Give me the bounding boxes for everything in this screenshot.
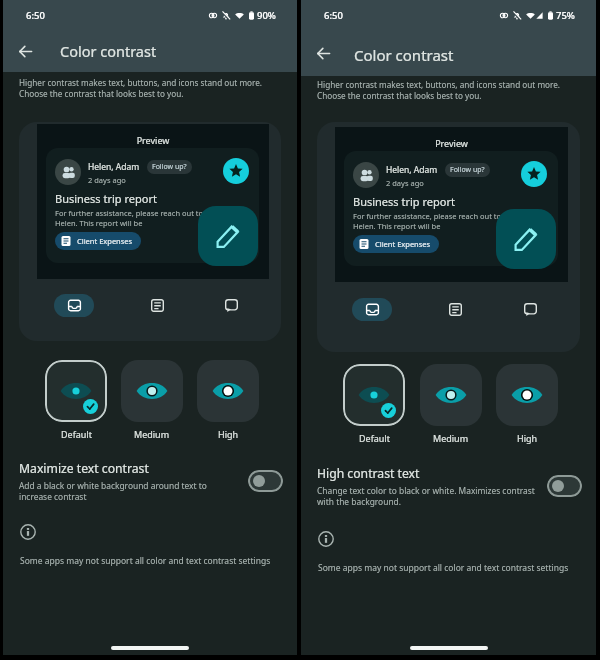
staticText: 2 days ago — [88, 175, 126, 185]
staticText: Higher contrast makes text, buttons, and… — [317, 79, 561, 101]
staticText: Medium — [134, 428, 170, 440]
staticText: Follow up? — [450, 165, 485, 175]
staticText: Color contrast — [60, 41, 157, 61]
button[interactable]: Client Expenses — [353, 235, 439, 253]
button[interactable] — [496, 364, 558, 426]
staticText: For further assistance, please reach out… — [55, 208, 238, 228]
staticText: Change text color to black or white. Max… — [317, 485, 535, 507]
staticText: Follow up? — [152, 162, 187, 172]
button[interactable]: Maximize text contrast — [3, 460, 297, 502]
staticText: Higher contrast makes text, buttons, and… — [19, 77, 263, 99]
button[interactable]: High contrast text — [301, 465, 596, 507]
button[interactable]: Articles — [443, 297, 467, 321]
button[interactable]: Articles — [145, 293, 169, 317]
staticText: 75% — [556, 9, 575, 22]
button[interactable]: Chat — [518, 297, 542, 321]
staticText: 6:50 — [26, 9, 45, 22]
staticText: Preview — [37, 134, 269, 146]
staticText: High contrast text — [317, 465, 420, 482]
button[interactable]: Compose — [198, 206, 258, 266]
button[interactable] — [45, 360, 107, 422]
staticText: Client Expenses — [375, 239, 431, 249]
staticText: Default — [359, 432, 390, 444]
staticText: Add a black or white background around t… — [19, 480, 207, 502]
button[interactable] — [343, 364, 405, 426]
staticText: 2 days ago — [386, 178, 424, 188]
staticText: Medium — [433, 432, 469, 444]
button[interactable]: Inbox — [352, 298, 392, 321]
staticText: Color contrast — [354, 45, 454, 65]
button[interactable]: Chat — [219, 293, 243, 317]
button[interactable] — [121, 360, 183, 422]
staticText: Business trip report — [353, 194, 455, 209]
button[interactable]: Compose — [496, 209, 556, 269]
staticText: Preview — [335, 137, 568, 149]
button[interactable] — [197, 360, 259, 422]
staticText: High — [517, 432, 538, 444]
button[interactable]: Star — [521, 161, 547, 187]
staticText: Helen, Adam — [88, 161, 140, 173]
button[interactable] — [420, 364, 482, 426]
staticText: Client Expenses — [77, 236, 133, 246]
button[interactable]: Star — [223, 158, 249, 184]
staticText: Helen, Adam — [386, 164, 438, 176]
button[interactable]: Back — [8, 34, 42, 68]
button[interactable]: Inbox — [54, 294, 94, 317]
staticText: 6:50 — [324, 9, 343, 22]
button[interactable]: Client Expenses — [55, 232, 141, 250]
staticText: High — [218, 428, 239, 440]
staticText: For further assistance, please reach out… — [353, 211, 536, 231]
staticText: Maximize text contrast — [19, 460, 149, 477]
staticText: Default — [61, 428, 92, 440]
staticText: Some apps may not support all color and … — [20, 555, 271, 567]
staticText: Some apps may not support all color and … — [318, 562, 569, 574]
staticText: Business trip report — [55, 191, 157, 206]
staticText: 90% — [257, 9, 276, 22]
button[interactable]: Back — [306, 36, 340, 70]
